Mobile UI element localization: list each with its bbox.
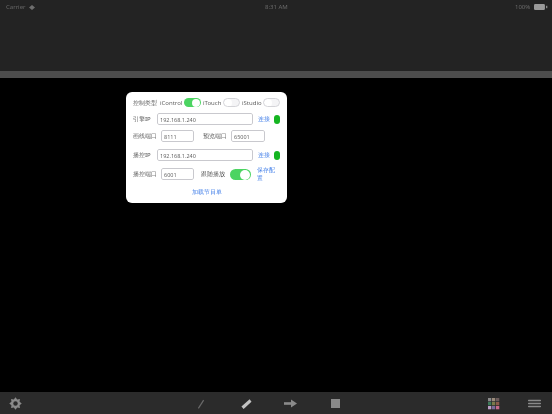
staticText: 100%: [515, 3, 531, 11]
other: Connection status: [274, 115, 280, 124]
staticText: 连接: [258, 151, 270, 159]
staticText: 192.168.1.240: [160, 152, 196, 159]
button[interactable]: 6001: [161, 168, 194, 180]
button[interactable]: Option: [263, 98, 280, 107]
button[interactable]: 加载节目单: [189, 187, 225, 197]
button[interactable]: Option: [223, 98, 240, 107]
staticText: 预览端口: [203, 132, 227, 140]
button[interactable]: Line tool: [193, 396, 208, 411]
staticText: 播控IP: [133, 151, 151, 159]
button[interactable]: 192.168.1.240: [157, 113, 253, 125]
button[interactable]: Eraser tool: [238, 396, 253, 411]
button[interactable]: Colour palette: [486, 396, 501, 411]
button[interactable]: Selected option: [184, 98, 201, 107]
staticText: 播控端口: [133, 170, 157, 178]
staticText: iStudio: [242, 99, 262, 107]
staticText: 控制类型: [133, 99, 157, 107]
button[interactable]: Square tool: [328, 396, 343, 411]
button[interactable]: 192.168.1.240: [157, 149, 253, 161]
staticText: 65001: [234, 133, 250, 140]
staticText: 连接: [258, 115, 270, 123]
button[interactable]: Settings: [7, 395, 23, 411]
other: Connection status: [274, 151, 280, 160]
staticText: iTouch: [203, 99, 222, 107]
staticText: 画线端口: [133, 132, 157, 140]
staticText: 保存配置: [257, 166, 280, 182]
staticText: 6001: [164, 171, 177, 178]
button[interactable]: Menu: [527, 396, 542, 411]
staticText: iControl: [160, 99, 183, 107]
button[interactable]: Follow playback toggle: [230, 169, 251, 180]
staticText: 8:31 AM: [265, 3, 288, 11]
staticText: 加载节目单: [192, 188, 222, 196]
staticText: 引擎IP: [133, 115, 151, 123]
button[interactable]: 8111: [161, 130, 194, 142]
button[interactable]: Arrow tool: [283, 396, 298, 411]
staticText: Carrier: [6, 3, 26, 11]
staticText: 8111: [164, 133, 177, 140]
staticText: 跟随播放: [201, 170, 225, 178]
button[interactable]: 65001: [231, 130, 265, 142]
staticText: 192.168.1.240: [160, 116, 196, 123]
